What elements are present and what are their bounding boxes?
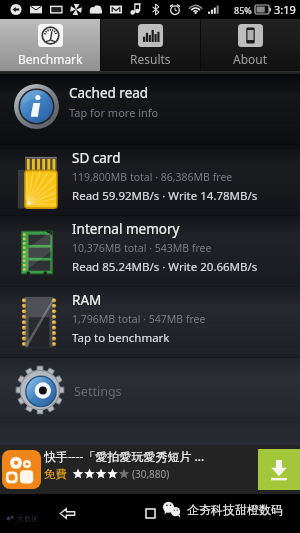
- button[interactable]: SD card: [0, 145, 300, 216]
- staticText: Read 59.92MB/s · Write 14.78MB/s: [72, 188, 258, 204]
- staticText: Tap for more info: [69, 105, 159, 120]
- button[interactable]: About: [200, 19, 300, 71]
- staticText: 大数据: [17, 514, 38, 523]
- button[interactable]: Settings: [0, 358, 300, 423]
- staticText: About: [233, 51, 268, 67]
- staticText: Read 85.24MB/s · Write 20.66MB/s: [72, 259, 258, 275]
- staticText: 快手----「愛拍愛玩愛秀短片 ...: [44, 448, 205, 464]
- staticText: 119,800MB total · 86,386MB free: [72, 170, 233, 184]
- staticText: 10,376MB total · 543MB free: [72, 241, 212, 255]
- button[interactable]: Back: [50, 499, 84, 528]
- button[interactable]: Install: [258, 449, 300, 490]
- staticText: 85%: [234, 4, 252, 16]
- staticText: 3:19: [274, 2, 296, 17]
- staticText: Cached read: [69, 84, 149, 102]
- staticText: RAM: [72, 291, 102, 309]
- button[interactable]: RAM: [0, 287, 300, 358]
- button[interactable]: Cached read: [0, 75, 300, 145]
- button[interactable]: Results: [100, 19, 200, 71]
- staticText: (30,880): [132, 467, 170, 481]
- staticText: Internal memory: [72, 220, 180, 238]
- button[interactable]: 快手----「愛拍愛玩愛秀短片 ...: [0, 445, 300, 494]
- button[interactable]: Recents: [136, 499, 164, 528]
- staticText: 1,796MB total · 547MB free: [72, 312, 206, 326]
- staticText: Benchmark: [18, 51, 83, 67]
- staticText: Results: [130, 51, 171, 67]
- staticText: 免費: [44, 467, 67, 481]
- staticText: SD card: [72, 149, 121, 167]
- staticText: Tap to benchmark: [72, 330, 170, 346]
- staticText: 企夯科技甜橙数码: [187, 502, 283, 517]
- staticText: Settings: [74, 383, 122, 400]
- button[interactable]: Benchmark: [0, 19, 100, 71]
- button[interactable]: Internal memory: [0, 216, 300, 287]
